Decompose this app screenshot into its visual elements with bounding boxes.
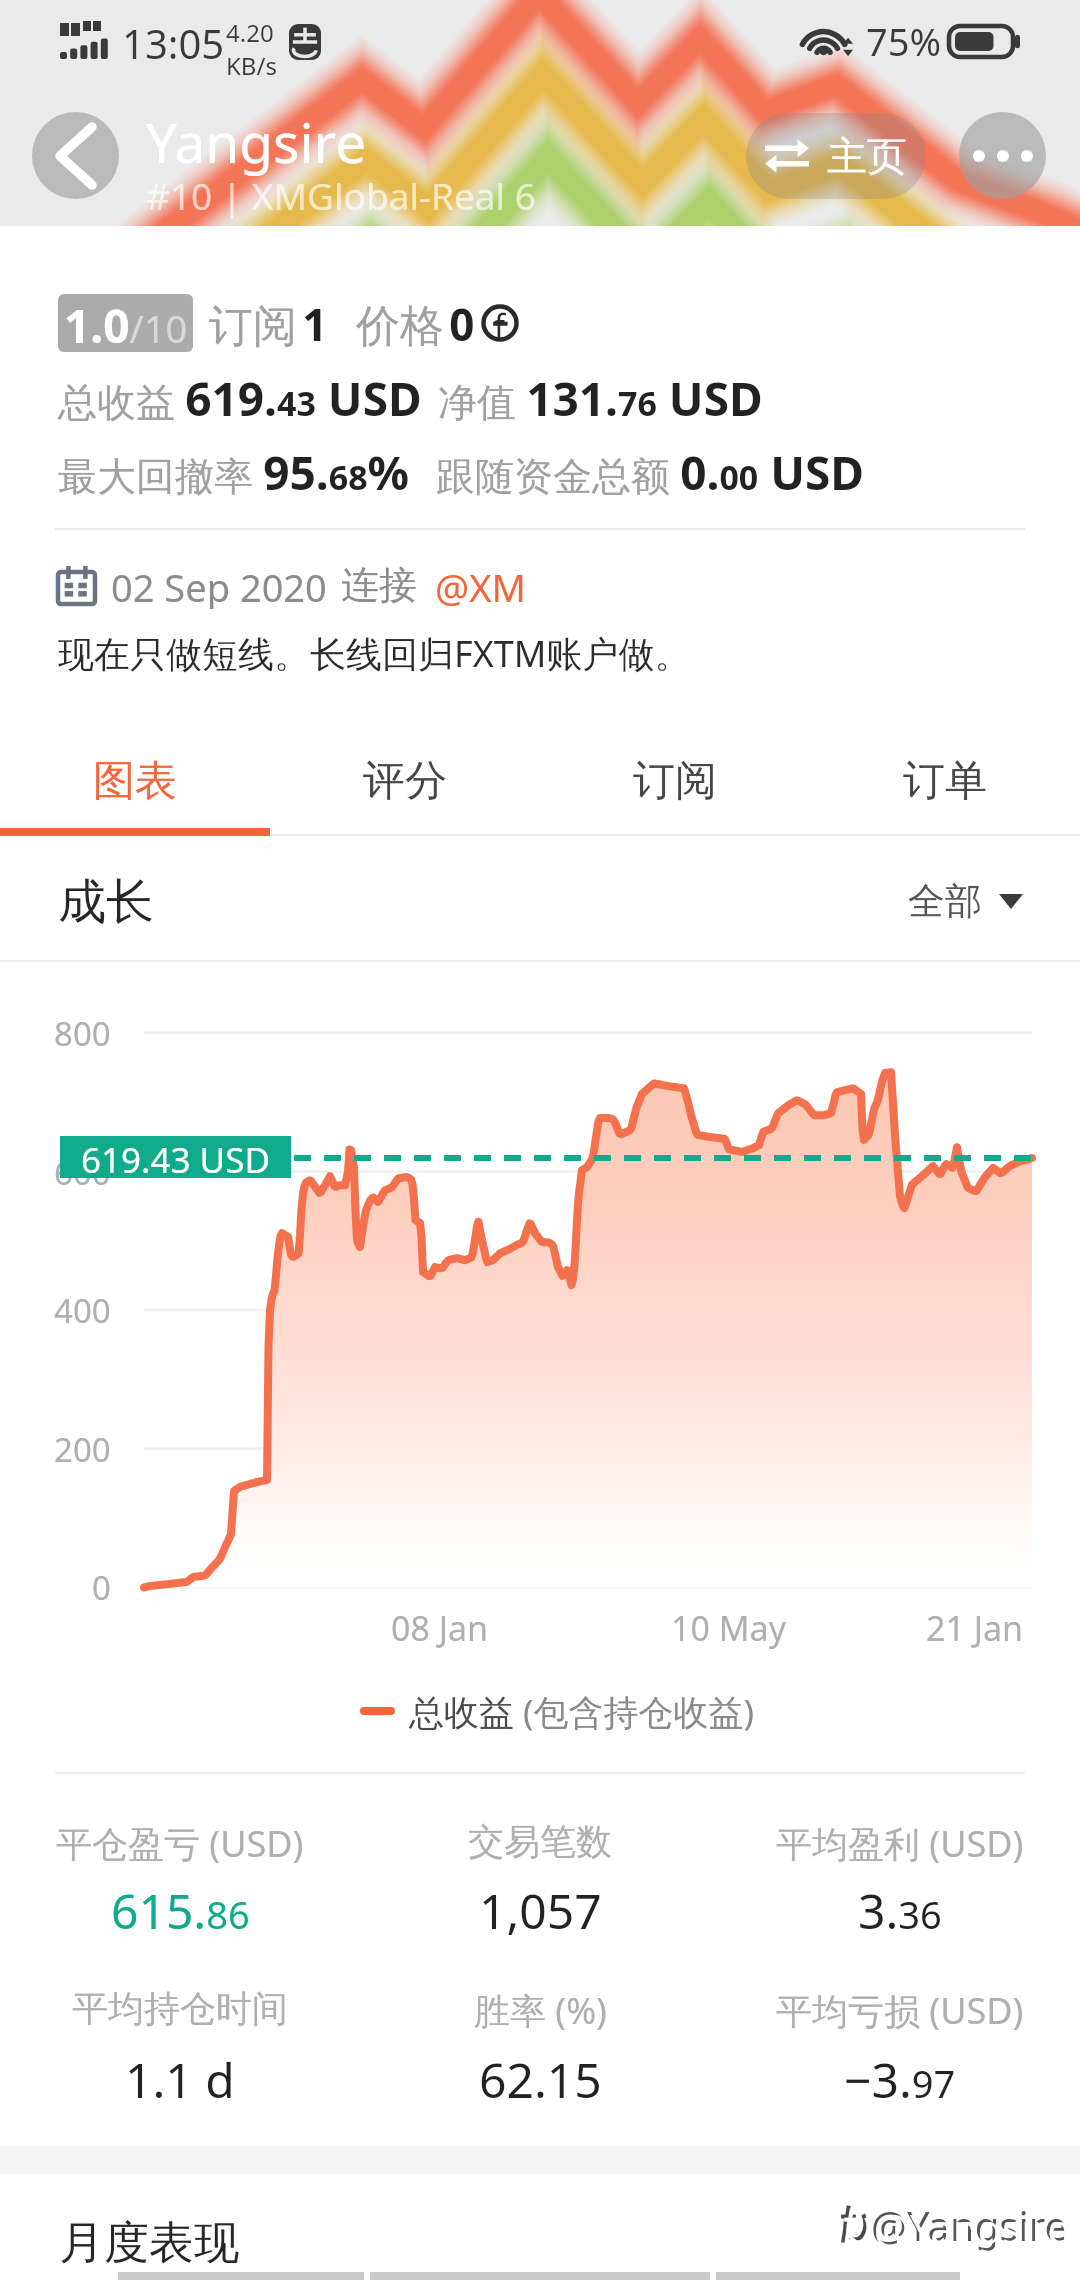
staticText: 最大回撤率 95.68% [58, 441, 410, 504]
staticText: 08 Jan [391, 1605, 489, 1651]
staticText: 62.15 [479, 2047, 602, 2112]
staticText: 1,057 [479, 1878, 602, 1943]
button[interactable]: 全部 [900, 870, 1031, 933]
staticText: #10 | XMGlobal-Real 6 [146, 170, 536, 220]
staticText: 615.86 [111, 1878, 250, 1943]
staticText: 交易笔数 [468, 1819, 612, 1864]
button[interactable]: 主页 [746, 113, 926, 199]
staticText: 评分 [363, 755, 447, 808]
staticText: −3.97 [844, 2047, 956, 2112]
staticText: 平均亏损 (USD) [776, 1986, 1024, 2035]
staticText: 价格 0 [356, 294, 475, 352]
staticText: 0 [92, 1565, 111, 1610]
staticText: 平仓盈亏 (USD) [56, 1819, 304, 1868]
staticText: 400 [54, 1288, 111, 1333]
staticText: @Yangsire [871, 2198, 1068, 2252]
staticText: 现在只做短线。长线回归FXTM账户做。 [58, 629, 691, 678]
button[interactable]: 评分 [270, 726, 540, 836]
staticText: 总收益 (包含持仓收益) [409, 1688, 755, 1734]
staticText: 800 [54, 1011, 111, 1056]
staticText: 总收益 619.43 USD [58, 367, 422, 430]
staticText: 10 May [671, 1605, 786, 1651]
staticText: 订阅 1 [209, 294, 328, 352]
button[interactable]: 订阅 [540, 726, 810, 836]
staticText: 连接 [341, 561, 417, 609]
staticText: 4.20 [226, 16, 274, 49]
staticText: 净值 131.76 USD [438, 367, 763, 430]
staticText: 成长 [58, 872, 154, 932]
staticText: 02 Sep 2020 [111, 561, 327, 609]
staticText: 619.43 USD [81, 1136, 270, 1178]
staticText: KB/s [226, 49, 277, 82]
staticText: 600 [54, 1150, 111, 1195]
staticText: 3.36 [858, 1878, 942, 1943]
staticText: 平均盈利 (USD) [776, 1819, 1024, 1868]
staticText: f [494, 304, 506, 342]
staticText: 13:05 [122, 16, 225, 70]
staticText: 1.0/10 [64, 294, 188, 352]
staticText: 平均持仓时间 [72, 1986, 288, 2031]
staticText: Yangsire [146, 104, 367, 179]
staticText: 全部 [908, 878, 982, 925]
staticText: 主页 [827, 131, 907, 181]
button[interactable]: 订单 [810, 726, 1080, 836]
staticText: 图表 [93, 755, 177, 808]
staticText: 1.1 d [125, 2047, 235, 2112]
staticText: @Yangsire [874, 2201, 1071, 2255]
staticText: 胜率 (%) [474, 1986, 607, 2035]
staticText: @XM [435, 561, 526, 609]
button[interactable]: 图表 [0, 726, 270, 836]
staticText: 200 [54, 1427, 111, 1472]
button[interactable]: Back [32, 112, 119, 199]
staticText: 订单 [903, 755, 987, 808]
staticText: 21 Jan [926, 1605, 1024, 1651]
staticText: 订阅 [633, 755, 717, 808]
button[interactable]: More options [959, 112, 1046, 199]
staticText: 75% [866, 15, 942, 67]
staticText: 跟随资金总额 0.00 USD [436, 441, 865, 504]
staticText: 月度表现 [59, 2215, 239, 2272]
